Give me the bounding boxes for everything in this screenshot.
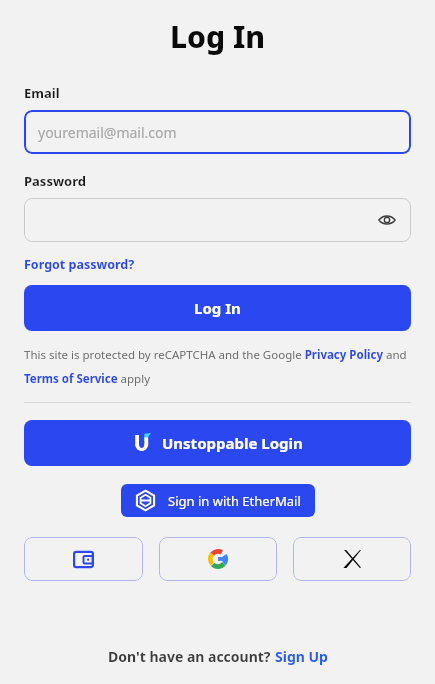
button[interactable]: Forgot password? [24,256,135,273]
button[interactable]: Unstoppable Login [24,420,411,466]
button[interactable]: Log In [24,285,411,331]
button[interactable]: Sign in with Google [159,537,277,581]
button[interactable]: Show password [24,198,411,242]
staticText: Log In [170,16,266,57]
button[interactable]: Connect wallet [24,537,143,581]
button[interactable]: youremail@mail.com [24,110,411,154]
button[interactable]: Sign in with X [293,537,411,581]
staticText: Sign in with EtherMail [168,492,301,510]
staticText: Password [24,172,86,190]
staticText: youremail@mail.com [38,123,177,142]
button[interactable]: Sign Up [275,647,328,666]
staticText: Sign Up [275,647,328,666]
staticText: This site is protected by reCAPTCHA and … [24,347,411,386]
button[interactable]: Show password [373,206,401,234]
button[interactable]: Sign in with EtherMail [121,484,315,517]
staticText: Unstoppable Login [162,433,303,453]
staticText: Log In [194,298,241,318]
staticText: Forgot password? [24,256,135,273]
staticText: Email [24,84,60,102]
staticText: Don't have an account? [108,647,275,666]
